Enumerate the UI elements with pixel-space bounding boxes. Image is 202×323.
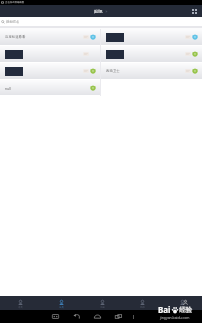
staticText: 正在保存屏幕截图 [5, 1, 25, 4]
staticText: 搜索吧名 [6, 20, 20, 24]
button[interactable] [0, 63, 100, 79]
button[interactable]: 首页 [0, 296, 41, 310]
staticText: 首页 [18, 306, 23, 309]
button[interactable]: 消息 [82, 296, 122, 310]
staticText: jingyan.baidu.com [160, 315, 190, 320]
button[interactable] [101, 46, 202, 62]
button[interactable]: 西游卫士 [101, 63, 202, 79]
button[interactable]: Grid view [190, 7, 199, 16]
staticText: 消息 [100, 306, 105, 309]
button[interactable] [0, 46, 100, 62]
staticText: 我的 [140, 306, 145, 309]
button[interactable]: Home [94, 313, 101, 320]
staticText: 西游卫士 [106, 69, 120, 73]
button[interactable]: null [0, 80, 100, 96]
staticText: 更多 [180, 306, 185, 309]
button[interactable] [101, 29, 202, 45]
button[interactable]: 更多 [162, 296, 202, 310]
button[interactable]: 百度知道看看 [0, 29, 100, 45]
button[interactable]: 搜索吧名 [0, 17, 202, 26]
staticText: 分类 [59, 306, 64, 309]
staticText: 经验 [179, 306, 192, 314]
button[interactable]: 我的 [122, 296, 162, 310]
button[interactable]: 分类 [41, 296, 82, 310]
staticText: null [5, 86, 11, 91]
button[interactable]: Back [73, 313, 80, 320]
button[interactable]: Screenshot [52, 313, 59, 320]
staticText: Bai [158, 304, 171, 315]
staticText: 贴吧 [94, 9, 103, 14]
button[interactable]: Recent apps [115, 313, 122, 320]
staticText: 百度知道看看 [5, 35, 26, 39]
